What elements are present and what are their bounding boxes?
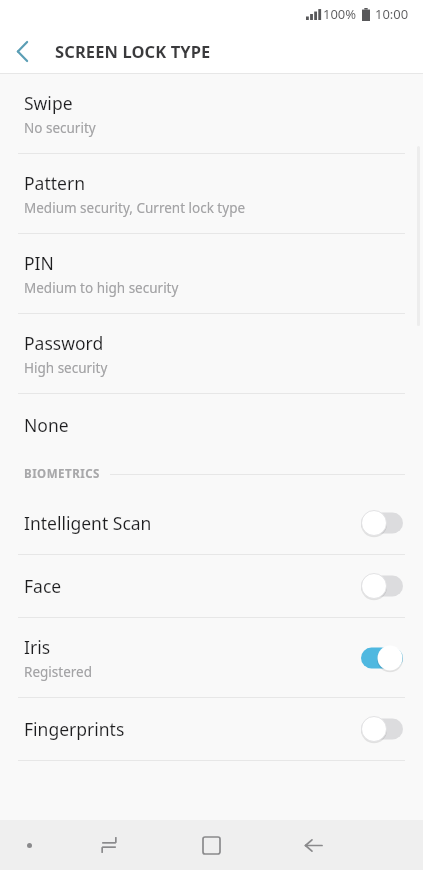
button[interactable]: Recent apps <box>58 820 160 870</box>
staticText: Intelligent Scan <box>24 511 152 535</box>
button[interactable]: PIN <box>0 234 423 313</box>
staticText: None <box>24 413 69 437</box>
button[interactable]: Intelligent Scan <box>0 492 423 554</box>
staticText: High security <box>24 359 108 377</box>
button[interactable]: Fingerprints <box>0 698 423 760</box>
button[interactable]: None <box>0 394 423 456</box>
staticText: 100% <box>323 5 357 23</box>
staticText: PIN <box>24 251 54 275</box>
button[interactable]: On <box>361 645 403 671</box>
staticText: Swipe <box>24 91 73 115</box>
staticText: Iris <box>24 635 51 659</box>
button[interactable]: Face <box>0 555 423 617</box>
staticText: Medium security, Current lock type <box>24 199 246 217</box>
button[interactable]: Back <box>262 820 364 870</box>
button[interactable]: Off <box>361 573 403 599</box>
staticText: Face <box>24 574 62 598</box>
staticText: 10:00 <box>375 5 409 23</box>
staticText: Medium to high security <box>24 279 179 297</box>
staticText: No security <box>24 119 96 137</box>
button[interactable]: Swipe <box>0 74 423 153</box>
button[interactable]: Password <box>0 314 423 393</box>
button[interactable]: Iris <box>0 618 423 697</box>
staticText: Registered <box>24 663 92 681</box>
button[interactable]: Pattern <box>0 154 423 233</box>
button[interactable]: Navigate up <box>0 29 44 73</box>
staticText: Password <box>24 331 104 355</box>
staticText: Fingerprints <box>24 717 125 741</box>
button[interactable]: Home <box>160 820 262 870</box>
button[interactable]: Off <box>361 510 403 536</box>
staticText: SCREEN LOCK TYPE <box>55 40 211 62</box>
button[interactable]: Off <box>361 716 403 742</box>
staticText: Pattern <box>24 171 85 195</box>
staticText: BIOMETRICS <box>24 466 100 482</box>
